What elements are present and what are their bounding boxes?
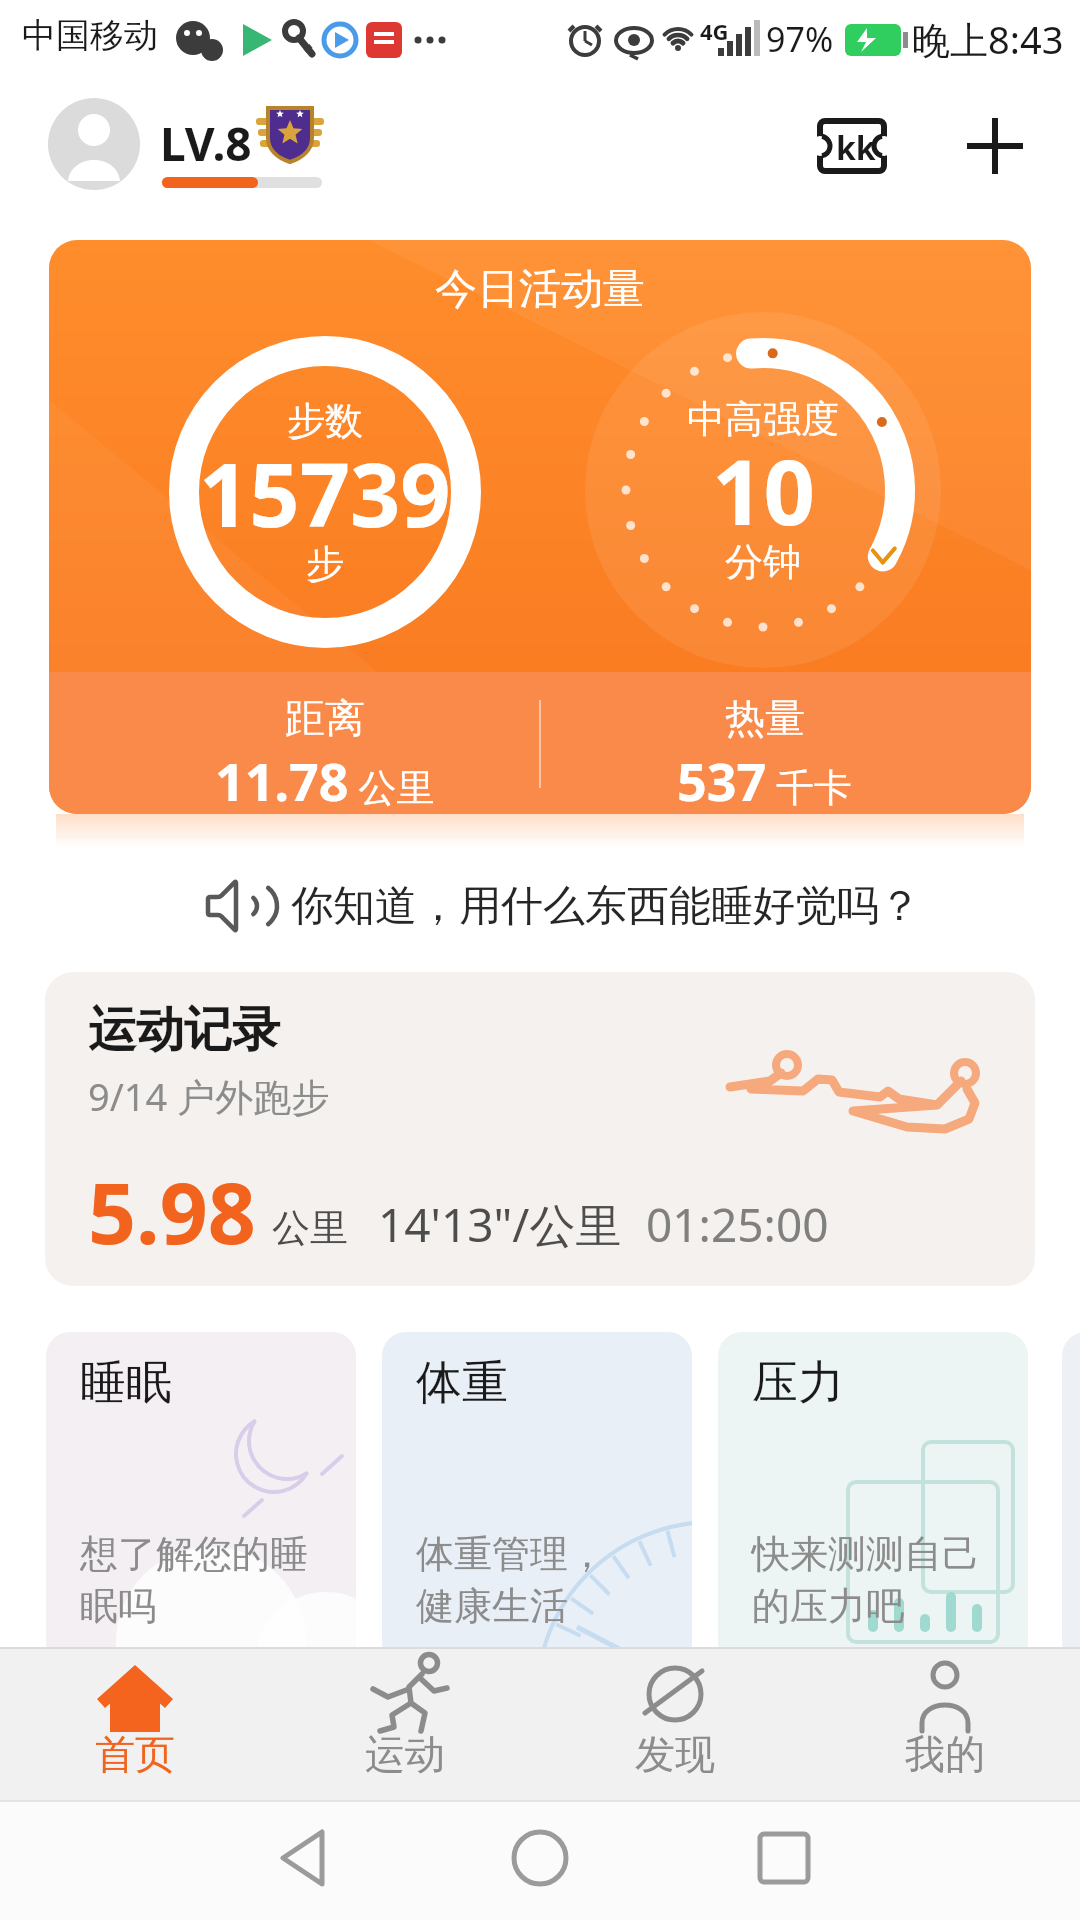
staticText: 睡眠 [80,1354,172,1412]
staticText: 距离 [285,693,365,743]
staticText: 体重管理， 健康生活 [416,1530,606,1630]
staticText: 11.78 公里 [215,745,435,815]
staticText: 97% [766,16,834,62]
staticText: 你知道，用什么东西能睡好觉吗？ [291,880,921,933]
button[interactable] [220,1800,420,1920]
staticText: 我的 [905,1729,985,1779]
button[interactable]: kk [836,126,876,170]
staticText: 14'13"/公里 [378,1193,622,1256]
staticText: 10 [712,429,815,552]
staticText: 发现 [635,1729,715,1779]
staticText: 中高强度 [687,395,839,443]
button[interactable]: 运动 [270,1647,540,1800]
staticText: 537 千卡 [677,745,853,815]
staticText: 01:25:00 [646,1193,829,1256]
staticText: 15739 [199,433,451,553]
staticText: 快来测测自己 的压力吧 [752,1530,980,1630]
staticText: 步 [306,540,344,588]
button[interactable]: 压力 [718,1332,1028,1667]
button[interactable]: 睡眠 [46,1332,356,1667]
staticText: 首页 [95,1729,175,1779]
button[interactable] [960,110,1030,180]
button[interactable]: 首页 [0,1647,270,1800]
staticText: 运动 [365,1729,445,1779]
staticText: 5.98 [88,1154,256,1268]
staticText: 今日活动量 [435,263,645,316]
staticText: 9/14 户外跑步 [88,1070,330,1122]
staticText: 步数 [287,397,363,445]
button[interactable]: 发现 [540,1647,810,1800]
staticText: 热量 [725,693,805,743]
button[interactable] [440,1800,640,1920]
staticText: 公里 [272,1204,348,1252]
staticText: LV.8 [160,112,252,175]
staticText: 晚上8:43 [912,13,1064,65]
staticText: 压力 [752,1354,844,1412]
button[interactable] [49,240,1031,814]
staticText: 想了解您的睡 眠吗 [80,1530,308,1630]
staticText: 分钟 [725,538,801,586]
button[interactable]: 运动记录 [45,972,1035,1286]
staticText: 体重 [416,1354,508,1412]
button[interactable]: 我的 [810,1647,1080,1800]
button[interactable]: 体重 [382,1332,692,1667]
button[interactable] [48,98,140,190]
staticText: 中国移动 [22,14,158,57]
button[interactable]: 你知道，用什么东西能睡好觉吗？ [205,878,921,934]
staticText: 运动记录 [88,1000,280,1060]
staticText: 4G [700,16,729,46]
button[interactable] [660,1800,860,1920]
